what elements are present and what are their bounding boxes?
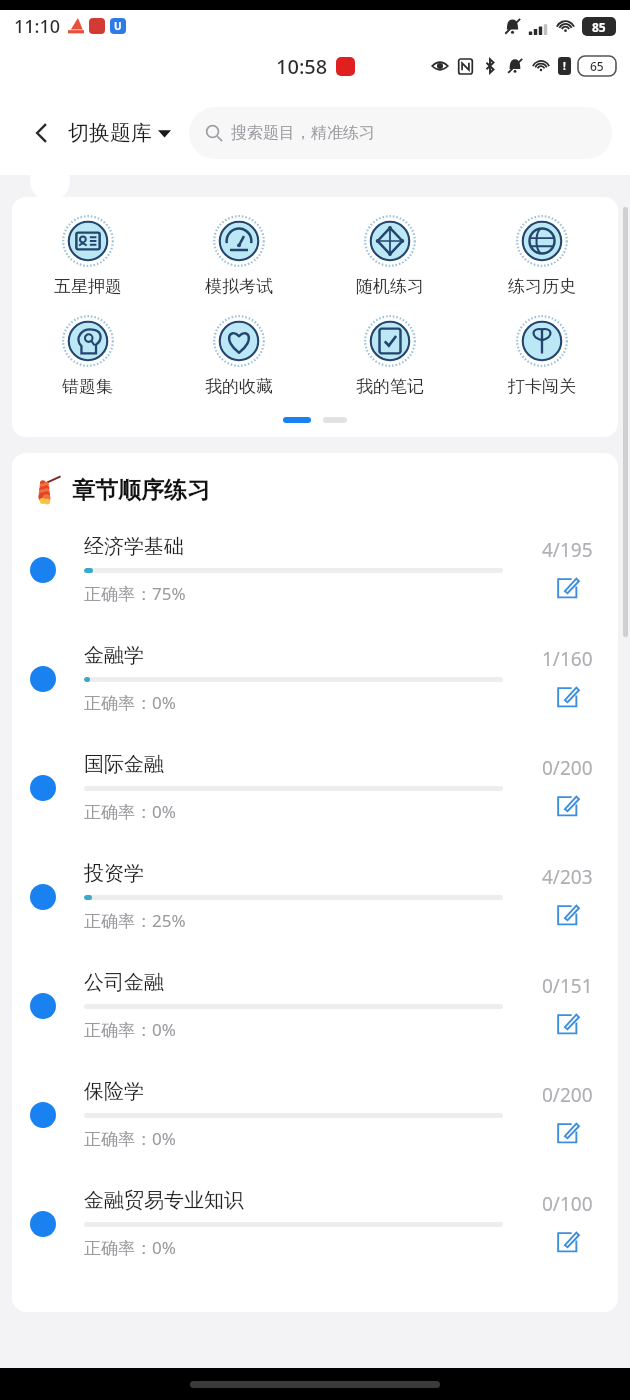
staticText: 国际金融 — [84, 752, 164, 777]
staticText: 85 — [592, 19, 606, 35]
staticText: 正确率：0% — [84, 691, 176, 714]
button[interactable]: Edit notes — [552, 1009, 582, 1039]
button[interactable]: 公司金融 — [12, 951, 618, 1060]
button[interactable]: Edit notes — [552, 791, 582, 821]
staticText: 11:10 — [14, 14, 61, 39]
button[interactable]: Edit notes — [552, 682, 582, 712]
staticText: 4/195 — [542, 537, 593, 563]
button[interactable]: Edit notes — [552, 900, 582, 930]
staticText: 模拟考试 — [205, 276, 273, 297]
staticText: 随机练习 — [356, 276, 424, 297]
button[interactable]: 金融学 — [12, 624, 618, 733]
button[interactable]: 打卡闯关 — [466, 315, 618, 397]
button[interactable]: Back — [22, 113, 62, 153]
staticText: 经济学基础 — [84, 534, 184, 559]
staticText: 正确率：0% — [84, 1018, 176, 1041]
staticText: 练习历史 — [508, 276, 576, 297]
staticText: 错题集 — [62, 376, 113, 397]
staticText: 我的笔记 — [356, 376, 424, 397]
button[interactable]: 我的笔记 — [314, 315, 466, 397]
staticText: 1/160 — [542, 646, 593, 672]
button[interactable]: Edit notes — [552, 1118, 582, 1148]
staticText: 金融学 — [84, 643, 144, 668]
button[interactable]: 投资学 — [12, 842, 618, 951]
staticText: 公司金融 — [84, 970, 164, 995]
button[interactable]: 我的收藏 — [163, 315, 314, 397]
button[interactable]: 模拟考试 — [163, 215, 314, 297]
button[interactable]: 错题集 — [12, 315, 163, 397]
button[interactable]: 经济学基础 — [12, 515, 618, 624]
staticText: 五星押题 — [54, 276, 122, 297]
button[interactable]: 金融贸易专业知识 — [12, 1169, 618, 1278]
staticText: 正确率：0% — [84, 1236, 176, 1259]
button[interactable]: Edit notes — [552, 573, 582, 603]
staticText: 正确率：25% — [84, 909, 186, 932]
staticText: 打卡闯关 — [508, 376, 576, 397]
staticText: 我的收藏 — [205, 376, 273, 397]
staticText: 章节顺序练习 — [72, 476, 210, 505]
staticText: 10:58 — [276, 53, 328, 80]
staticText: 正确率：0% — [84, 800, 176, 823]
button[interactable]: Edit notes — [552, 1227, 582, 1257]
staticText: 正确率：0% — [84, 1127, 176, 1150]
button[interactable]: 保险学 — [12, 1060, 618, 1169]
staticText: 正确率：75% — [84, 582, 186, 605]
staticText: ! — [563, 59, 566, 73]
staticText: 65 — [590, 58, 604, 74]
staticText: U — [114, 19, 122, 33]
staticText: 保险学 — [84, 1079, 144, 1104]
button[interactable]: 搜索题目，精准练习 — [189, 107, 612, 159]
staticText: 0/200 — [542, 755, 593, 781]
staticText: 0/151 — [542, 973, 593, 999]
staticText: 投资学 — [84, 861, 144, 886]
staticText: 搜索题目，精准练习 — [231, 123, 375, 143]
staticText: 金融贸易专业知识 — [84, 1188, 244, 1213]
button[interactable]: 五星押题 — [12, 215, 163, 297]
button[interactable]: 切换题库 — [68, 120, 171, 146]
staticText: 0/100 — [542, 1191, 593, 1217]
staticText: 4/203 — [542, 864, 593, 890]
button[interactable]: 随机练习 — [314, 215, 466, 297]
staticText: 0/200 — [542, 1082, 593, 1108]
staticText: 切换题库 — [68, 120, 152, 146]
button[interactable]: 练习历史 — [466, 215, 618, 297]
button[interactable]: 国际金融 — [12, 733, 618, 842]
